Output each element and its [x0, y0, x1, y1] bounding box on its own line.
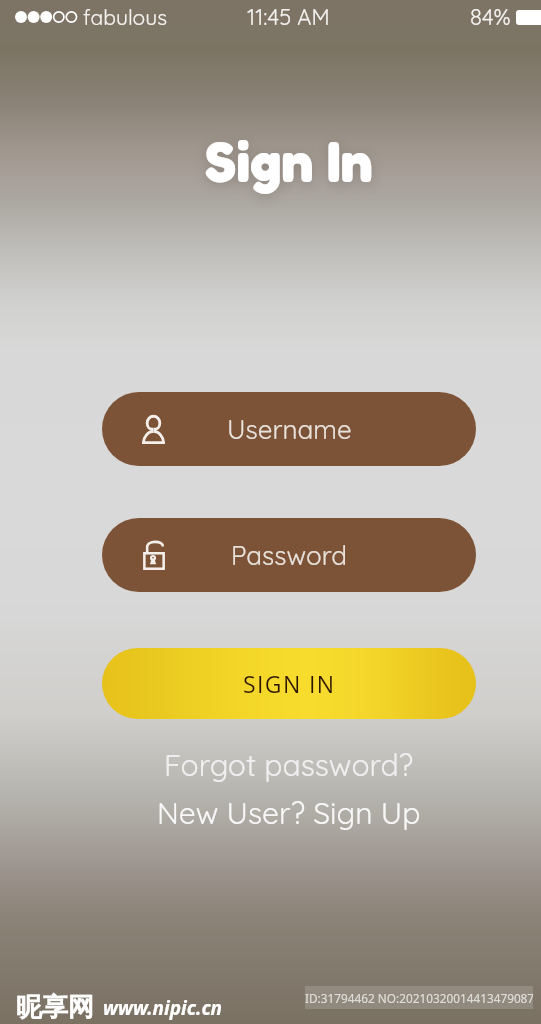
staticText: SIGN IN	[243, 668, 336, 699]
staticText: fabulous	[83, 4, 168, 30]
button[interactable]: SIGN IN	[102, 648, 476, 719]
staticText: 84%	[470, 3, 511, 31]
button[interactable]: Password	[102, 518, 476, 592]
staticText: 11:45 AM	[247, 3, 330, 31]
staticText: ID:31794462 NO:20210320014413479087	[305, 990, 533, 1006]
staticText: Username	[227, 413, 352, 446]
button[interactable]: Username	[102, 392, 476, 466]
staticText: www.nipic.cn	[103, 995, 223, 1021]
staticText: Password	[231, 539, 347, 572]
staticText: 昵享网	[16, 991, 94, 1024]
staticText: Sign In	[205, 125, 373, 194]
button[interactable]: New User? Sign Up	[147, 791, 431, 835]
button[interactable]: Forgot password?	[154, 743, 424, 787]
